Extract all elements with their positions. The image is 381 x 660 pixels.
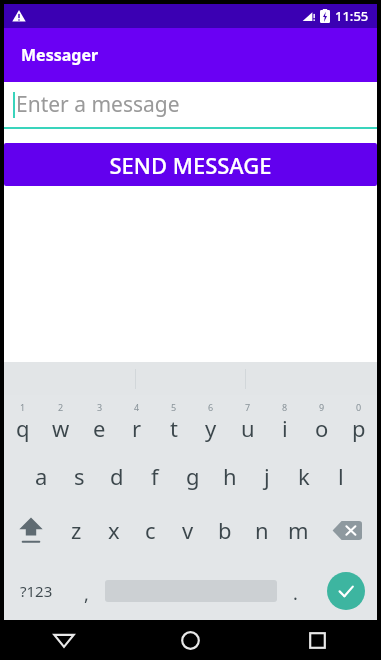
staticText: p	[352, 413, 366, 443]
staticText: 11:55	[335, 7, 369, 25]
staticText: s	[74, 461, 85, 491]
staticText: 9	[319, 401, 325, 413]
staticText: e	[93, 413, 106, 443]
staticText: a	[35, 461, 48, 491]
staticText: d	[110, 461, 124, 491]
button[interactable]: c	[132, 503, 169, 557]
staticText: n	[255, 515, 269, 545]
button[interactable]: Enter	[314, 557, 377, 624]
button[interactable]: .	[277, 557, 314, 624]
button[interactable]: ,	[68, 557, 105, 624]
staticText: g	[186, 461, 200, 491]
staticText: 0	[356, 401, 362, 413]
staticText: .	[293, 581, 298, 606]
staticText: j	[264, 461, 270, 491]
staticText: 8	[282, 401, 288, 413]
button[interactable]: Back	[0, 620, 127, 660]
staticText: x	[108, 515, 120, 545]
staticText: Messager	[21, 44, 99, 66]
staticText: l	[338, 461, 344, 491]
staticText: ,	[84, 582, 89, 607]
staticText: t	[170, 413, 178, 443]
staticText: 5	[171, 401, 177, 413]
button[interactable]: m	[280, 503, 317, 557]
staticText: f	[151, 461, 159, 491]
staticText: v	[182, 515, 194, 545]
button[interactable]: 3	[80, 395, 118, 449]
button[interactable]: 5	[155, 395, 192, 449]
button[interactable]: n	[243, 503, 280, 557]
button[interactable]: k	[285, 449, 322, 503]
staticText: w	[52, 413, 70, 443]
button[interactable]: d	[98, 449, 136, 503]
staticText: 3	[97, 401, 103, 413]
button[interactable]: 8	[266, 395, 303, 449]
staticText: 2	[58, 401, 64, 413]
button[interactable]: Shift	[4, 503, 57, 557]
button[interactable]: 6	[192, 395, 229, 449]
staticText: 6	[208, 401, 214, 413]
staticText: 1	[20, 401, 26, 413]
staticText: ?123	[20, 581, 53, 601]
button[interactable]: Home	[127, 620, 254, 660]
staticText: 7	[245, 401, 251, 413]
button[interactable]: 9	[303, 395, 340, 449]
button[interactable]: 7	[229, 395, 266, 449]
button[interactable]: SEND MESSAGE	[4, 143, 377, 186]
staticText: m	[288, 515, 309, 545]
button[interactable]: z	[57, 503, 95, 557]
staticText: 4	[134, 401, 140, 413]
staticText: h	[223, 461, 237, 491]
button[interactable]: g	[174, 449, 211, 503]
staticText: q	[16, 413, 30, 443]
staticText: z	[71, 515, 82, 545]
button[interactable]: x	[95, 503, 132, 557]
button[interactable]: a	[22, 449, 60, 503]
staticText: u	[241, 413, 255, 443]
button[interactable]: 1	[4, 395, 42, 449]
button[interactable]: Recents	[254, 620, 381, 660]
button[interactable]: b	[206, 503, 243, 557]
button[interactable]: j	[248, 449, 285, 503]
staticText: i	[282, 413, 288, 443]
button[interactable]: Backspace	[317, 503, 377, 557]
button[interactable]: 0	[340, 395, 377, 449]
staticText: o	[315, 413, 329, 443]
staticText: k	[298, 461, 310, 491]
button[interactable]: f	[136, 449, 174, 503]
button[interactable]: 4	[118, 395, 155, 449]
button[interactable]: 2	[42, 395, 80, 449]
staticText: Enter a message	[16, 90, 180, 119]
button[interactable]: Enter a message	[4, 82, 377, 129]
staticText: r	[132, 413, 142, 443]
button[interactable]: Space	[105, 567, 277, 614]
staticText: y	[205, 413, 217, 443]
staticText: c	[145, 515, 156, 545]
staticText: SEND MESSAGE	[109, 150, 272, 180]
button[interactable]: h	[211, 449, 248, 503]
button[interactable]: ?123	[4, 557, 68, 624]
button[interactable]: s	[60, 449, 98, 503]
staticText: b	[218, 515, 232, 545]
button[interactable]: l	[322, 449, 359, 503]
button[interactable]: v	[169, 503, 206, 557]
